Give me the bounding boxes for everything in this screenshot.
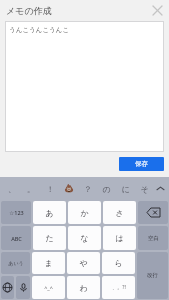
button[interactable]: 保存 [119,157,164,171]
staticText: に [121,184,130,194]
button[interactable]: ABC [1,226,31,250]
button[interactable]: か [68,201,101,224]
button[interactable]: 削除 [138,201,168,224]
staticText: あいう [8,260,24,266]
staticText: メモの作成 [6,5,52,16]
button[interactable]: 改行 [137,252,168,299]
staticText: な [80,233,89,243]
staticText: ^_^ [44,284,53,291]
button[interactable]: の [97,177,116,200]
button[interactable]: は [103,226,136,250]
button[interactable]: ？ [78,177,97,200]
button[interactable]: 💩 [59,177,78,200]
staticText: 、。?! [112,284,126,291]
button[interactable]: に [116,177,135,200]
button[interactable]: 音声入力 [16,276,30,299]
staticText: の [102,184,111,194]
staticText: ？ [84,184,92,194]
button[interactable]: わ [67,276,100,299]
button[interactable]: 閉じる [149,2,166,19]
staticText: た [45,233,54,243]
button[interactable]: ま [32,252,65,274]
staticText: 、 [8,184,16,194]
staticText: 💩 [64,184,74,193]
staticText: わ [79,283,88,293]
button[interactable]: ☆123 [1,201,31,224]
staticText: ABC [11,235,22,242]
staticText: さ [115,208,124,218]
button[interactable]: ！ [40,177,59,200]
staticText: 改行 [147,272,158,279]
staticText: 。 [27,184,35,194]
staticText: は [115,233,124,243]
button[interactable]: うんこうんこうんこ [5,21,164,152]
staticText: か [80,208,89,218]
staticText: うんこうんこうんこ [9,26,69,34]
staticText: 保存 [135,160,148,168]
button[interactable]: や [67,252,100,274]
button[interactable]: ら [102,252,135,274]
button[interactable]: そ [135,177,154,200]
button[interactable]: さ [103,201,136,224]
staticText: ら [114,258,123,268]
button[interactable]: な [68,226,101,250]
button[interactable]: 言語切替 [1,276,14,299]
button[interactable]: 候補を展開 [154,177,167,200]
button[interactable]: あいう [1,252,30,274]
staticText: や [79,258,88,268]
button[interactable]: ^_^ [32,276,65,299]
staticText: ！ [46,184,54,194]
staticText: ☆123 [9,209,24,216]
button[interactable]: た [33,226,66,250]
staticText: そ [140,184,149,194]
button[interactable]: あ [33,201,66,224]
staticText: あ [45,208,54,218]
staticText: ま [44,258,53,268]
staticText: 空白 [148,235,159,242]
button[interactable]: 空白 [138,226,168,250]
button[interactable]: 、。?! [102,276,135,299]
